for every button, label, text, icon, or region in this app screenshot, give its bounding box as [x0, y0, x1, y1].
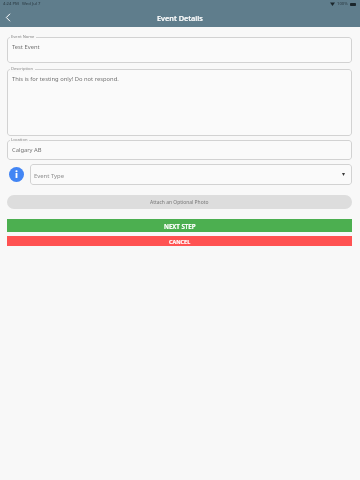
staticText: 100% [337, 1, 348, 7]
button[interactable]: Back [0, 9, 16, 25]
staticText: CANCEL [169, 238, 191, 245]
button[interactable]: CANCEL [7, 236, 352, 246]
staticText: Location [11, 137, 28, 143]
button[interactable]: Information [9, 167, 24, 182]
staticText: This is for testing only! Do not respond… [12, 75, 119, 83]
staticText: Event Type [34, 172, 64, 180]
button[interactable] [7, 37, 352, 63]
staticText: Test Event [12, 43, 40, 51]
button[interactable]: NEXT STEP [7, 219, 352, 232]
staticText: Description [11, 66, 34, 72]
button[interactable]: Attach an Optional Photo [7, 195, 352, 209]
staticText: Wed Jul 7 [22, 1, 41, 7]
button[interactable]: Event Type [30, 164, 352, 185]
staticText: 4:24 PM [3, 1, 19, 7]
staticText: Event Name [11, 34, 35, 40]
staticText: Calgary AB [12, 146, 42, 154]
button[interactable] [7, 69, 352, 136]
staticText: Event Details [157, 13, 203, 23]
button[interactable] [7, 140, 352, 160]
staticText: Attach an Optional Photo [150, 199, 209, 206]
staticText: NEXT STEP [164, 222, 196, 230]
